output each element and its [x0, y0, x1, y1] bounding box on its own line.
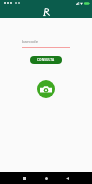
button[interactable]: Back — [62, 172, 73, 184]
button[interactable]: Recents — [19, 172, 30, 184]
button[interactable]: Scan with camera — [37, 80, 55, 98]
staticText: barcode — [22, 39, 39, 45]
button[interactable]: Home — [41, 172, 52, 184]
staticText: CONSULTA — [37, 58, 55, 62]
button[interactable]: CONSULTA — [30, 56, 62, 64]
